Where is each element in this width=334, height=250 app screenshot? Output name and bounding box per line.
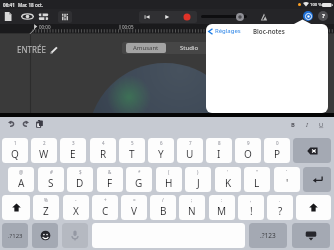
button[interactable]: % [33,195,59,220]
button[interactable]: $ [67,167,93,192]
staticText: . [279,197,281,203]
button[interactable]: , [238,195,264,220]
button[interactable]: ; [179,195,205,220]
staticText: M [217,204,227,218]
button[interactable]: Undo [8,120,15,127]
button[interactable]: # [38,167,64,192]
button[interactable]: 3 [60,138,86,163]
button[interactable]: . [267,195,293,220]
button[interactable]: Track view [38,11,49,22]
button[interactable]: ( [156,167,182,192]
staticText: 2 [43,140,46,146]
staticText: 6 [160,140,163,146]
staticText: " [256,169,258,175]
staticText: ´ [286,169,288,175]
staticText: P [274,147,281,161]
button[interactable]: Réglages [208,27,241,35]
button[interactable]: Paste [36,120,43,128]
button[interactable]: Rewind [143,13,151,21]
staticText: S [48,176,54,190]
staticText: 4 [102,140,105,146]
staticText: Z [43,204,49,218]
button[interactable]: Shift [296,195,331,220]
button[interactable]: B [288,120,298,129]
button[interactable]: ' [215,167,241,192]
button[interactable]: / [150,195,176,220]
button[interactable]: U [316,120,326,129]
staticText: ' [286,176,289,190]
button[interactable]: 9 [235,138,261,163]
staticText: A [18,176,25,190]
button[interactable]: " [244,167,270,192]
button[interactable]: Redo [22,120,29,127]
button[interactable]: 1 [2,138,28,163]
staticText: % [44,197,48,203]
staticText: B [291,121,295,129]
button[interactable]: Emoji [32,223,58,248]
button[interactable]: Faders [58,11,72,23]
button[interactable]: Studio [168,43,210,53]
staticText: ( [168,169,170,175]
button[interactable]: Hide keyboard [292,223,330,248]
staticText: / [162,197,164,203]
staticText: ' [227,169,229,175]
staticText: F [107,176,113,190]
staticText: Réglages [215,27,241,35]
button[interactable]: Help [318,11,328,21]
button[interactable]: + [92,195,118,220]
button[interactable]: @ [8,167,34,192]
staticText: 1 [14,140,17,146]
button[interactable]: Record [183,13,191,21]
staticText: 3 [72,140,75,146]
button[interactable]: 6 [148,138,174,163]
button[interactable]: & [97,167,123,192]
button[interactable]: I [302,120,312,129]
button[interactable]: .?123 [2,223,28,248]
button[interactable]: Metronome [259,12,269,22]
button[interactable]: 7 [177,138,203,163]
staticText: ? [322,12,325,20]
button[interactable]: Backspace [293,138,331,163]
button[interactable]: - [63,195,89,220]
staticText: @ [19,169,24,175]
button[interactable]: ´ [274,167,300,192]
staticText: Mar. 18 oct. [18,2,44,8]
staticText: ; [191,197,193,203]
staticText: L [254,176,260,190]
staticText: R [100,147,107,161]
staticText: # [50,169,53,175]
button[interactable]: 0 [264,138,290,163]
button[interactable]: Settings [303,11,313,21]
staticText: 100 % [310,2,322,8]
button[interactable]: Master volume [236,13,244,21]
button[interactable]: 5 [119,138,145,163]
staticText: 00:05 [122,24,134,30]
button[interactable]: Return [303,167,331,192]
staticText: Q [11,147,19,161]
button[interactable]: Dictation [62,223,88,248]
button[interactable]: 4 [90,138,116,163]
button[interactable]: Play [163,13,171,21]
staticText: 5 [131,140,134,146]
button[interactable]: = [121,195,147,220]
staticText: H [165,176,173,190]
staticText: : [221,197,223,203]
button[interactable]: 8 [206,138,232,163]
button[interactable]: Amusant [126,43,166,53]
staticText: .?123 [8,232,23,240]
button[interactable]: ) [185,167,211,192]
staticText: $ [79,169,82,175]
staticText: Studio [180,44,199,52]
button[interactable]: * [126,167,152,192]
button[interactable]: Loop browser [21,11,34,22]
staticText: W [39,147,49,161]
button[interactable]: 2 [31,138,57,163]
staticText: N [188,204,196,218]
button[interactable]: .?123 [249,223,287,248]
staticText: 06:41 [3,2,15,8]
button[interactable]: Shift [2,195,30,220]
button[interactable]: My songs [3,11,13,22]
staticText: ) [197,169,199,175]
button[interactable]: : [209,195,235,220]
